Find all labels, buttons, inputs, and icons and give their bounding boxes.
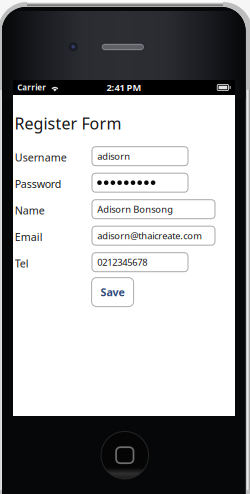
- staticText: Adisorn Bonsong: [97, 203, 173, 215]
- staticText: Save: [101, 285, 125, 299]
- staticText: adisorn: [97, 150, 130, 162]
- staticText: Carrier: [17, 82, 46, 93]
- staticText: 0212345678: [97, 256, 147, 268]
- staticText: 2:41 PM: [106, 81, 141, 94]
- staticText: Register Form: [14, 113, 121, 134]
- staticText: adisorn@thaicreate.com: [97, 229, 202, 242]
- button[interactable]: Save: [92, 278, 134, 307]
- staticText: Name: [15, 203, 45, 217]
- staticText: Tel: [15, 256, 29, 270]
- staticText: Username: [15, 150, 67, 164]
- staticText: Email: [15, 230, 43, 244]
- staticText: Password: [15, 177, 62, 191]
